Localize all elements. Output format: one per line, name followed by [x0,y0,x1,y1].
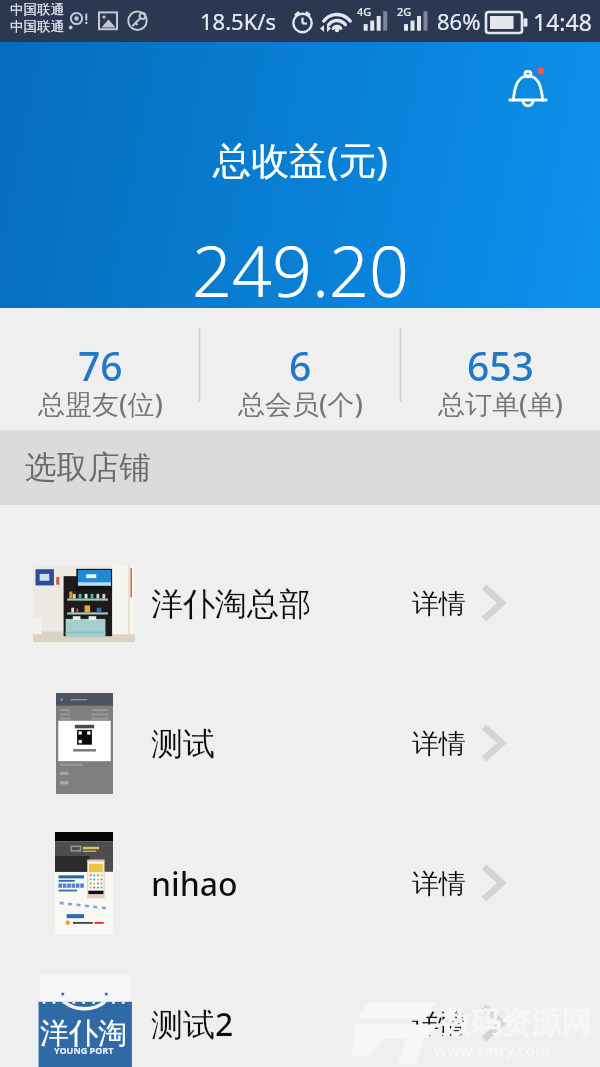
staticText: 653 [467,339,534,392]
staticText: 详情 [412,587,466,621]
staticText: 详情 [412,727,466,761]
staticText: 2G [397,4,412,19]
staticText: 总收益(元) [213,133,388,185]
staticText: 总会员(个) [238,385,363,422]
staticText: 总订单(单) [438,385,563,422]
staticText: 测试 [151,724,215,764]
button[interactable]: 76 [0,308,200,430]
staticText: 洋仆淘总部 [151,584,311,624]
staticText: 14:48 [533,6,592,37]
button[interactable]: 洋仆淘总部 [0,533,600,673]
staticText: 选取店铺 [25,448,151,488]
staticText: 总盟友(位) [38,385,163,422]
button[interactable]: 测试 [0,673,600,813]
staticText: 4G [357,4,372,19]
staticText: 中国联通 [10,18,64,35]
staticText: 6 [289,339,312,392]
staticText: 详情 [412,1007,466,1041]
staticText: YOUNG PORT [54,1044,114,1056]
staticText: 测试2 [151,1002,234,1046]
staticText: 数码资源网 [441,1004,591,1042]
staticText: 18.5K/s [200,6,276,36]
staticText: nihao [151,862,238,906]
staticText: 86% [437,6,481,36]
staticText: 洋仆淘 [40,1015,127,1052]
button[interactable]: 6 [200,308,400,430]
staticText: 详情 [412,867,466,901]
button[interactable]: nihao [0,813,600,953]
button[interactable]: 洋仆淘 [0,953,600,1067]
button[interactable]: 653 [400,308,600,430]
staticText: 中国联通 [10,1,64,18]
staticText: 76 [78,339,123,392]
button[interactable]: Notifications [500,57,556,113]
staticText: 249.20 [192,222,409,317]
